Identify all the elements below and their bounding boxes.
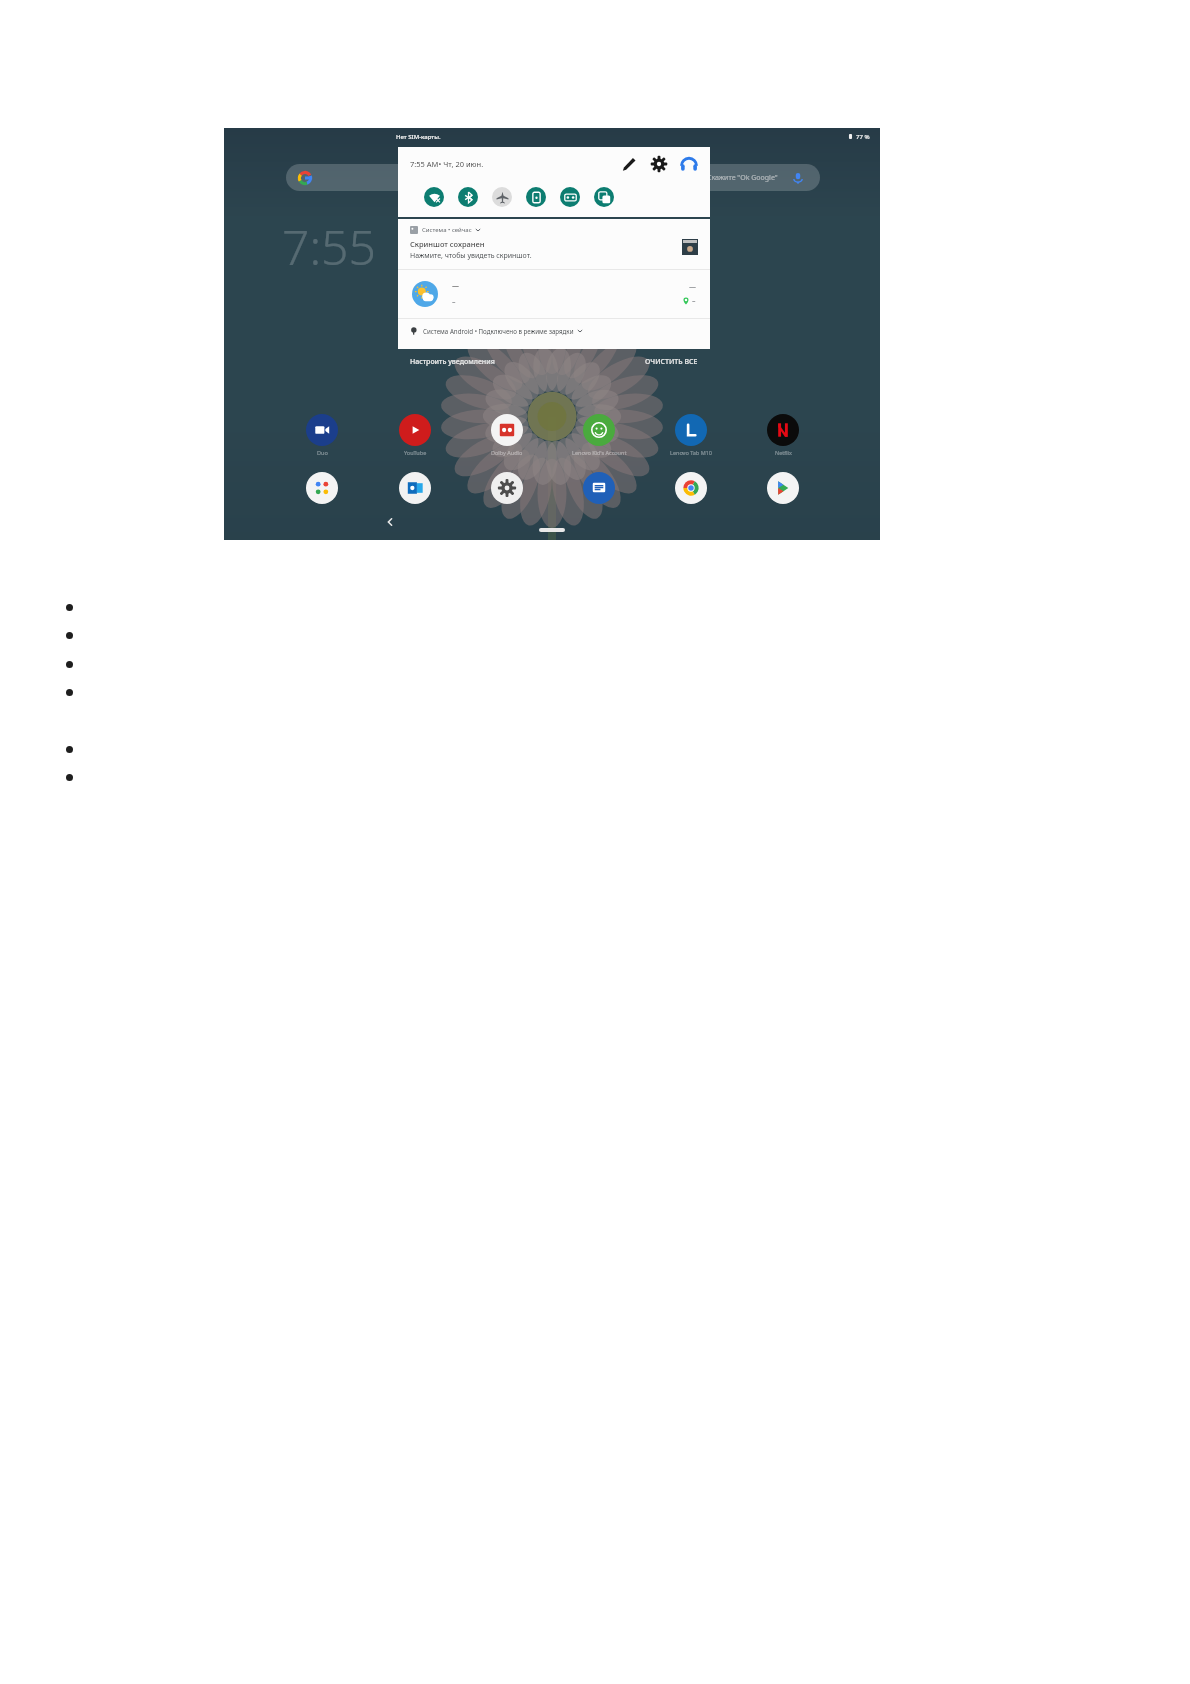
staticText: — [689, 282, 696, 292]
staticText: Нажмите, чтобы увидеть скриншот. [410, 251, 532, 261]
button[interactable]: Duo [294, 414, 350, 456]
staticText: Настроить уведомления [410, 357, 495, 367]
button[interactable]: Bluetooth [458, 187, 478, 207]
staticText: ОЧИСТИТЬ ВСЕ [645, 357, 698, 367]
button[interactable]: Wi-Fi off [424, 187, 444, 207]
button[interactable]: Netflix [755, 414, 811, 456]
button[interactable] [294, 472, 350, 504]
staticText: 7:55 AM• Чт, 20 июн. [410, 159, 484, 169]
staticText: Lenovo Kid's Account [572, 449, 627, 456]
staticText: 7:55 [282, 214, 376, 279]
button[interactable] [479, 472, 535, 504]
button[interactable]: Dolby Audio [479, 414, 535, 456]
button[interactable]: Настроить уведомления [408, 355, 497, 369]
staticText: Duo [317, 449, 328, 456]
button[interactable]: Home [539, 528, 565, 532]
staticText: – [452, 297, 456, 307]
button[interactable] [571, 472, 627, 504]
staticText: Скажите "Ok Google" [707, 173, 778, 183]
button[interactable]: YouTube [387, 414, 443, 456]
button[interactable]: Airplane mode [492, 187, 512, 207]
staticText: Нет SIM-карты. [396, 133, 441, 141]
button[interactable]: Система Android • Подключено в режиме за… [398, 319, 710, 343]
staticText: – [692, 296, 696, 306]
button[interactable]: Система • сейчас [398, 219, 710, 269]
button[interactable]: Lenovo Tab M10 [663, 414, 719, 456]
staticText: Dolby Audio [491, 449, 523, 456]
button[interactable]: ОЧИСТИТЬ ВСЕ [643, 355, 700, 369]
button[interactable]: Settings [650, 155, 668, 173]
button[interactable] [663, 472, 719, 504]
staticText: Система • сейчас [422, 226, 472, 234]
staticText: 77 % [856, 133, 870, 141]
button[interactable]: Voice search [790, 170, 806, 186]
staticText: — [452, 281, 459, 291]
button[interactable] [755, 472, 811, 504]
staticText: Lenovo Tab M10 [670, 449, 712, 456]
staticText: Скриншот сохранен [410, 239, 485, 249]
button[interactable]: Edit [620, 155, 638, 173]
button[interactable]: Lenovo Kid's Account [571, 414, 627, 456]
button[interactable]: Cast screen [594, 187, 614, 207]
staticText: Система Android • Подключено в режиме за… [423, 327, 574, 335]
button[interactable]: Auto-rotate [526, 187, 546, 207]
button[interactable]: Скажите "Ok Google" [286, 164, 820, 191]
button[interactable] [387, 472, 443, 504]
button[interactable]: Back [382, 514, 398, 530]
button[interactable]: — [398, 270, 710, 318]
staticText: YouTube [404, 449, 427, 456]
staticText: Netflix [775, 449, 792, 456]
button[interactable]: User [680, 155, 698, 173]
button[interactable]: Dolby Audio [560, 187, 580, 207]
